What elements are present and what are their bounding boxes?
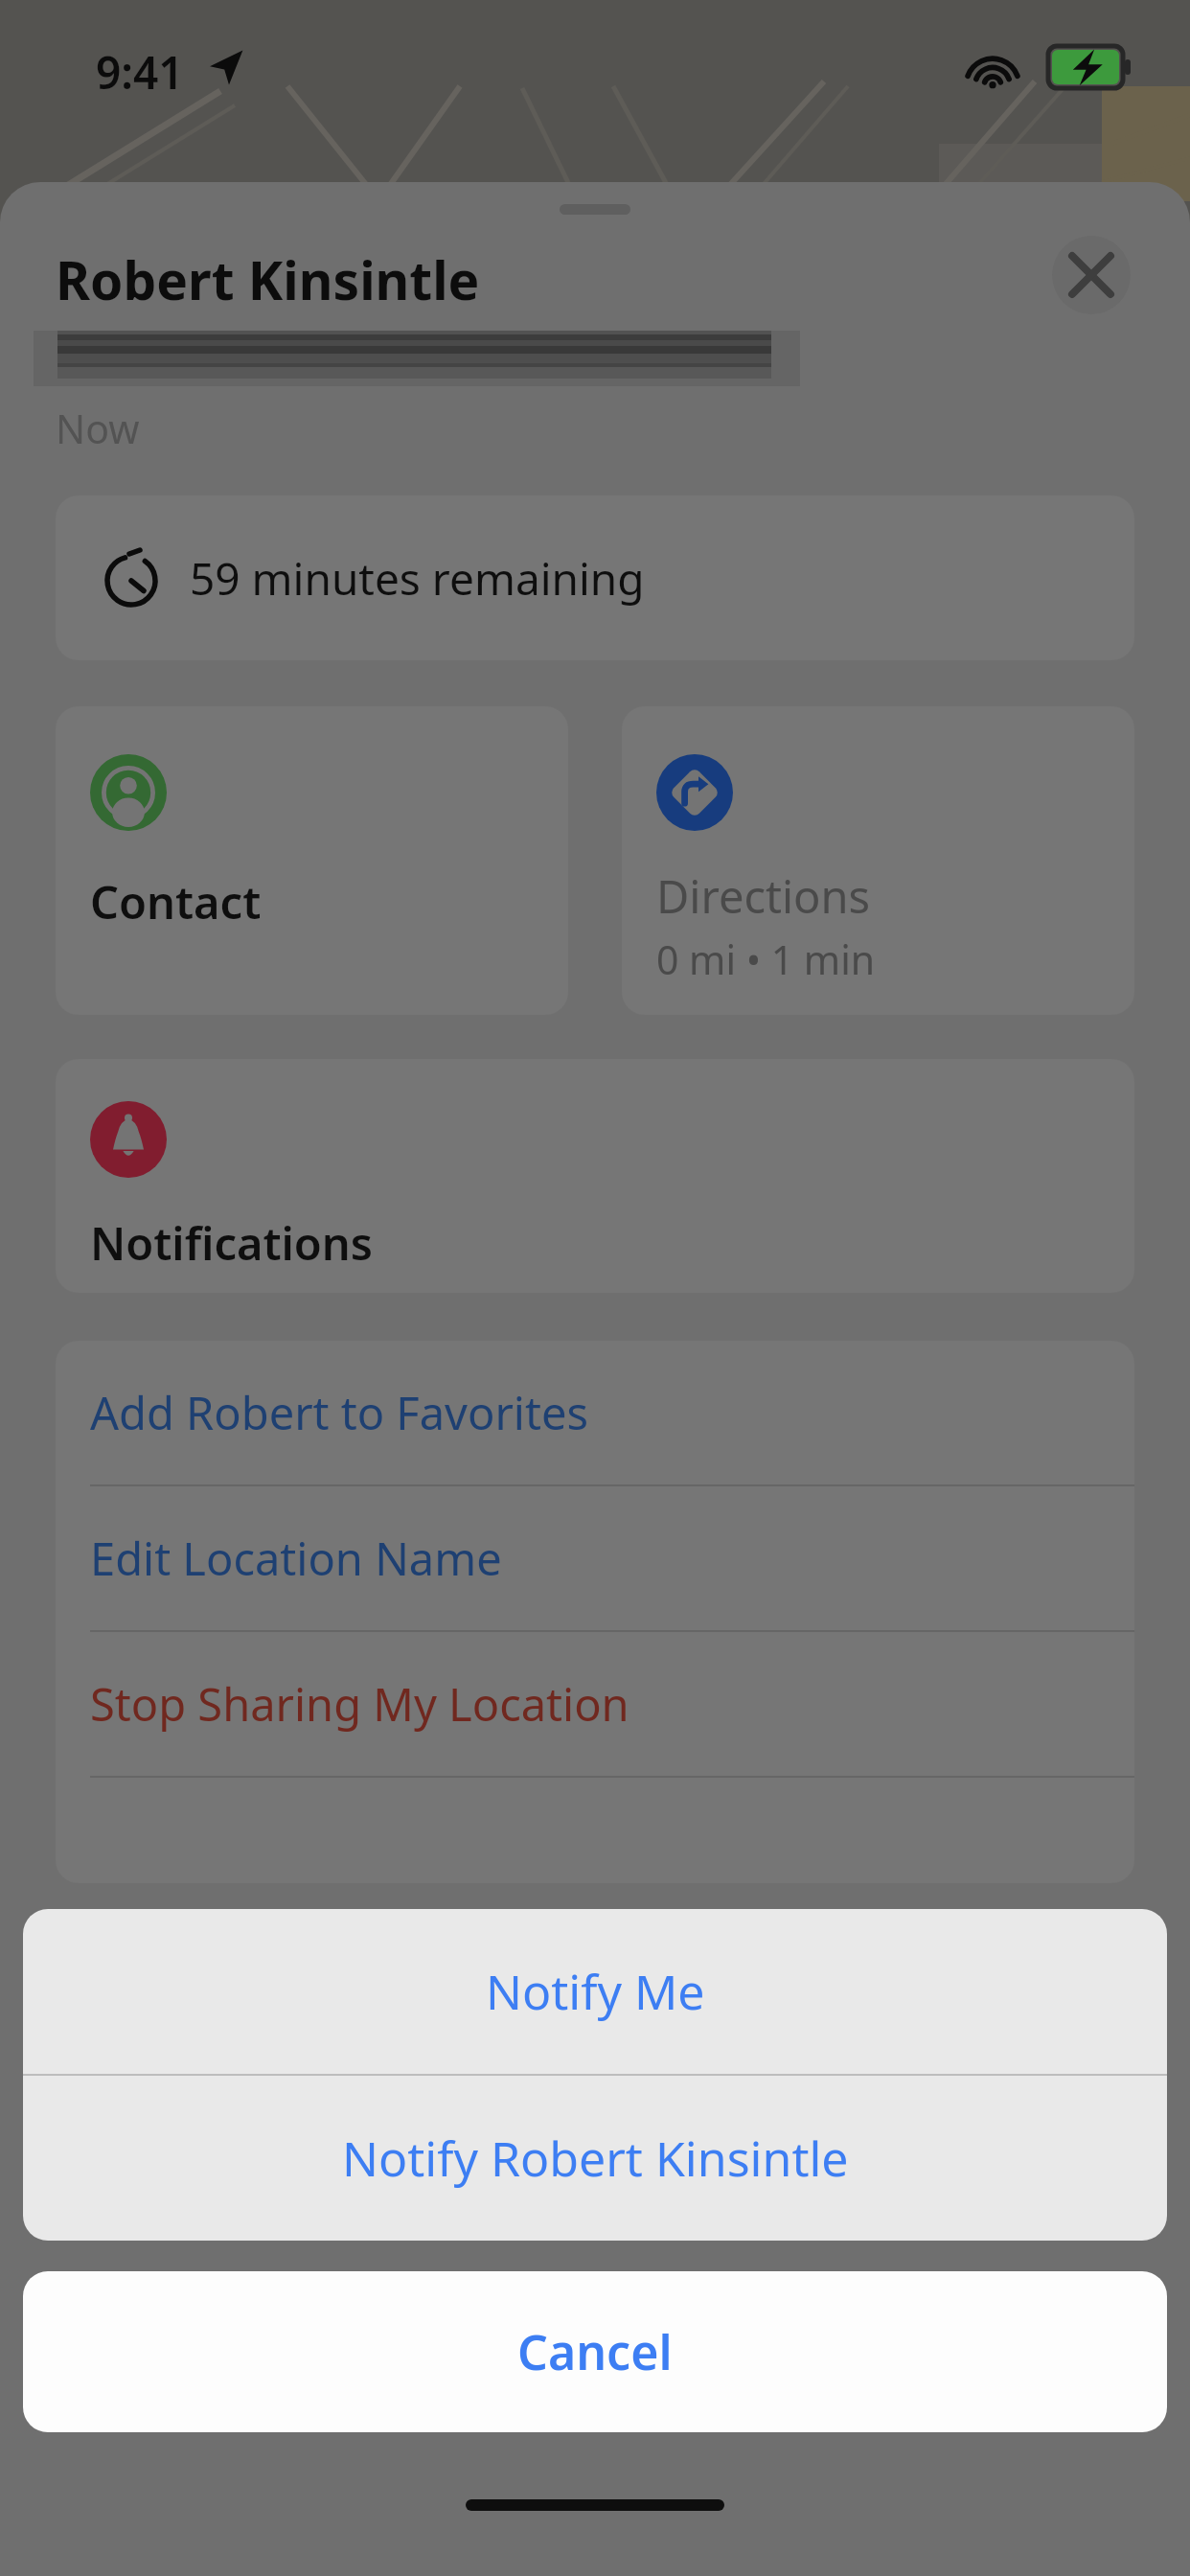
staticText: 59 minutes remaining xyxy=(190,548,645,609)
button[interactable]: Stop Sharing My Location xyxy=(56,1632,1134,1776)
staticText: Notify Me xyxy=(486,1959,705,2024)
staticText: 9:41 xyxy=(96,42,184,103)
staticText: Notify Robert Kinsintle xyxy=(342,2126,849,2191)
button[interactable]: Edit Location Name xyxy=(56,1486,1134,1630)
staticText: Directions xyxy=(656,865,871,927)
button[interactable]: Close xyxy=(1052,236,1131,314)
button[interactable]: Notifications xyxy=(56,1059,1134,1293)
staticText: Add Robert to Favorites xyxy=(90,1382,588,1443)
button[interactable]: 59 minutes remaining xyxy=(56,495,1134,660)
staticText: Now xyxy=(56,402,140,455)
button[interactable]: Cancel xyxy=(23,2271,1167,2432)
staticText: Cancel xyxy=(517,2319,673,2384)
staticText: Robert Kinsintle xyxy=(56,243,480,315)
button[interactable]: Add Robert to Favorites xyxy=(56,1341,1134,1484)
staticText: Notifications xyxy=(90,1212,374,1274)
staticText: 0 mi • 1 min xyxy=(656,932,876,986)
staticText: Stop Sharing My Location xyxy=(90,1673,629,1735)
staticText: Contact xyxy=(90,871,262,932)
button[interactable]: Notify Me xyxy=(23,1909,1167,2074)
button[interactable]: Contact xyxy=(56,706,568,1015)
button[interactable]: Directions xyxy=(622,706,1134,1015)
button[interactable]: Notify Robert Kinsintle xyxy=(23,2076,1167,2241)
staticText: Edit Location Name xyxy=(90,1528,502,1589)
